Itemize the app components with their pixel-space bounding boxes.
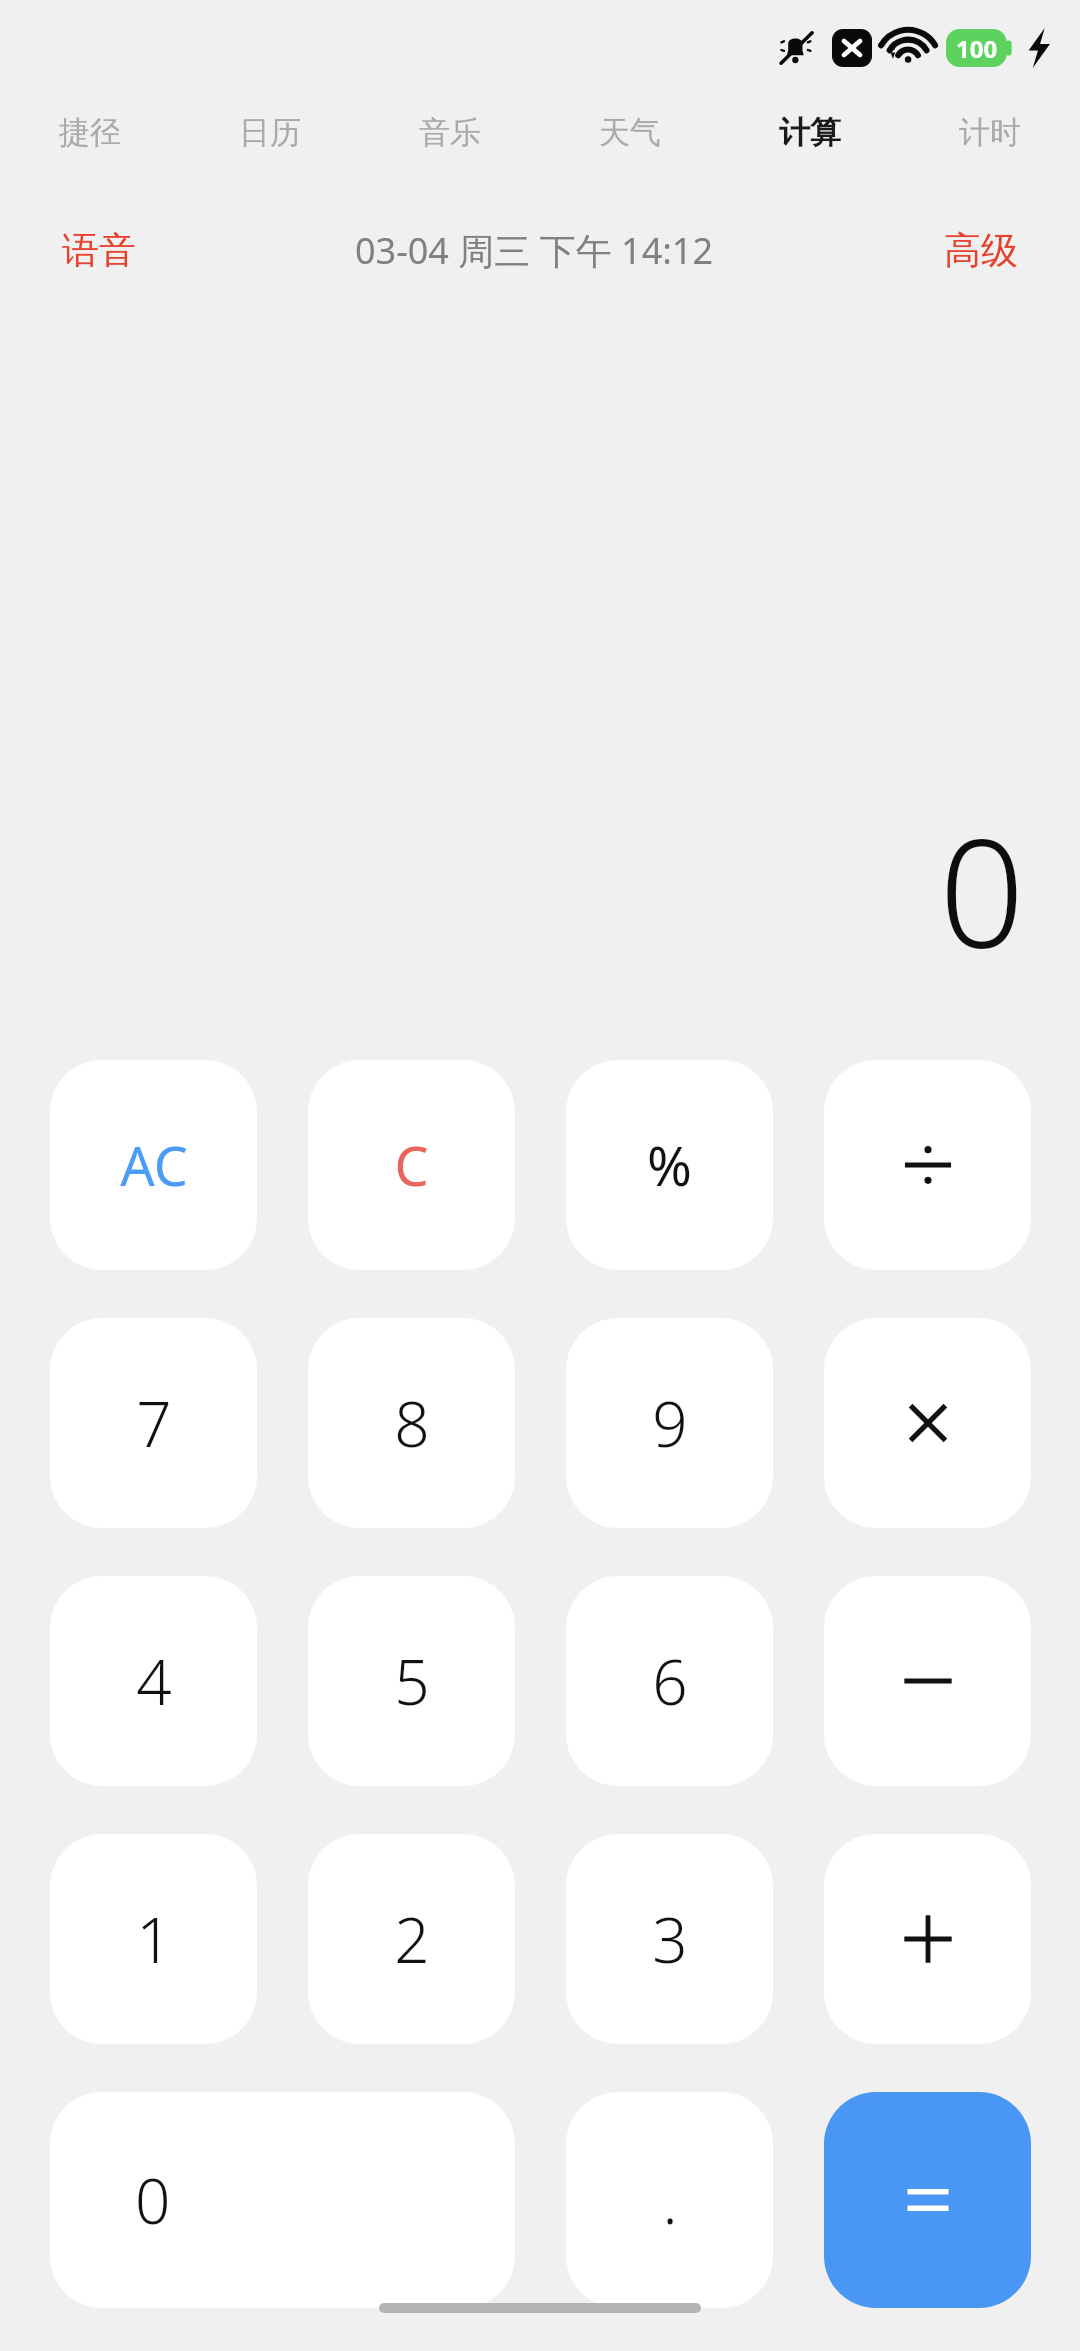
button[interactable]: Divide bbox=[824, 1060, 1031, 1270]
staticText: 4 bbox=[136, 1639, 172, 1723]
staticText: 1 bbox=[136, 1897, 172, 1981]
button[interactable]: 捷径 bbox=[0, 96, 180, 168]
staticText: 03-04 周三 下午 14:12 bbox=[355, 226, 714, 275]
button[interactable]: 高级 bbox=[944, 227, 1018, 274]
staticText: 2 bbox=[394, 1897, 430, 1981]
button[interactable]: 6 bbox=[566, 1576, 773, 1786]
button[interactable]: 8 bbox=[308, 1318, 515, 1528]
staticText: 高级 bbox=[944, 227, 1018, 274]
button[interactable]: . bbox=[566, 2092, 773, 2308]
button[interactable]: 5 bbox=[308, 1576, 515, 1786]
staticText: 9 bbox=[652, 1381, 688, 1465]
staticText: 计时 bbox=[959, 113, 1021, 152]
button[interactable]: AC bbox=[50, 1060, 257, 1270]
staticText: 语音 bbox=[62, 227, 136, 274]
staticText: 天气 bbox=[599, 113, 661, 152]
button[interactable]: 日历 bbox=[180, 96, 360, 168]
staticText: 0 bbox=[135, 2158, 171, 2242]
staticText: 0 bbox=[939, 788, 1025, 992]
button[interactable]: 4 bbox=[50, 1576, 257, 1786]
staticText: 捷径 bbox=[59, 113, 121, 152]
button[interactable]: % bbox=[566, 1060, 773, 1270]
staticText: 3 bbox=[652, 1897, 688, 1981]
staticText: AC bbox=[120, 1128, 188, 1202]
button[interactable]: 0 bbox=[50, 2092, 515, 2308]
button[interactable]: Minus bbox=[824, 1576, 1031, 1786]
staticText: 7 bbox=[136, 1381, 172, 1465]
staticText: 5 bbox=[394, 1639, 430, 1723]
staticText: C bbox=[394, 1128, 429, 1202]
button[interactable]: Multiply bbox=[824, 1318, 1031, 1528]
button[interactable]: Plus bbox=[824, 1834, 1031, 2044]
button[interactable]: 1 bbox=[50, 1834, 257, 2044]
button[interactable]: Equals bbox=[824, 2092, 1031, 2308]
button[interactable]: C bbox=[308, 1060, 515, 1270]
staticText: 音乐 bbox=[419, 113, 481, 152]
button[interactable]: 语音 bbox=[62, 227, 136, 274]
staticText: 6 bbox=[652, 1639, 688, 1723]
staticText: % bbox=[647, 1128, 692, 1202]
staticText: 8 bbox=[394, 1381, 430, 1465]
staticText: 日历 bbox=[239, 113, 301, 152]
button[interactable]: 天气 bbox=[540, 96, 720, 168]
button[interactable]: 计时 bbox=[900, 96, 1080, 168]
button[interactable]: 7 bbox=[50, 1318, 257, 1528]
button[interactable]: 9 bbox=[566, 1318, 773, 1528]
button[interactable]: 3 bbox=[566, 1834, 773, 2044]
button[interactable]: 音乐 bbox=[360, 96, 540, 168]
staticText: 计算 bbox=[779, 113, 841, 152]
button[interactable]: 2 bbox=[308, 1834, 515, 2044]
staticText: . bbox=[662, 2158, 678, 2242]
button[interactable]: 计算 bbox=[720, 96, 900, 168]
staticText: 100 bbox=[956, 32, 998, 65]
